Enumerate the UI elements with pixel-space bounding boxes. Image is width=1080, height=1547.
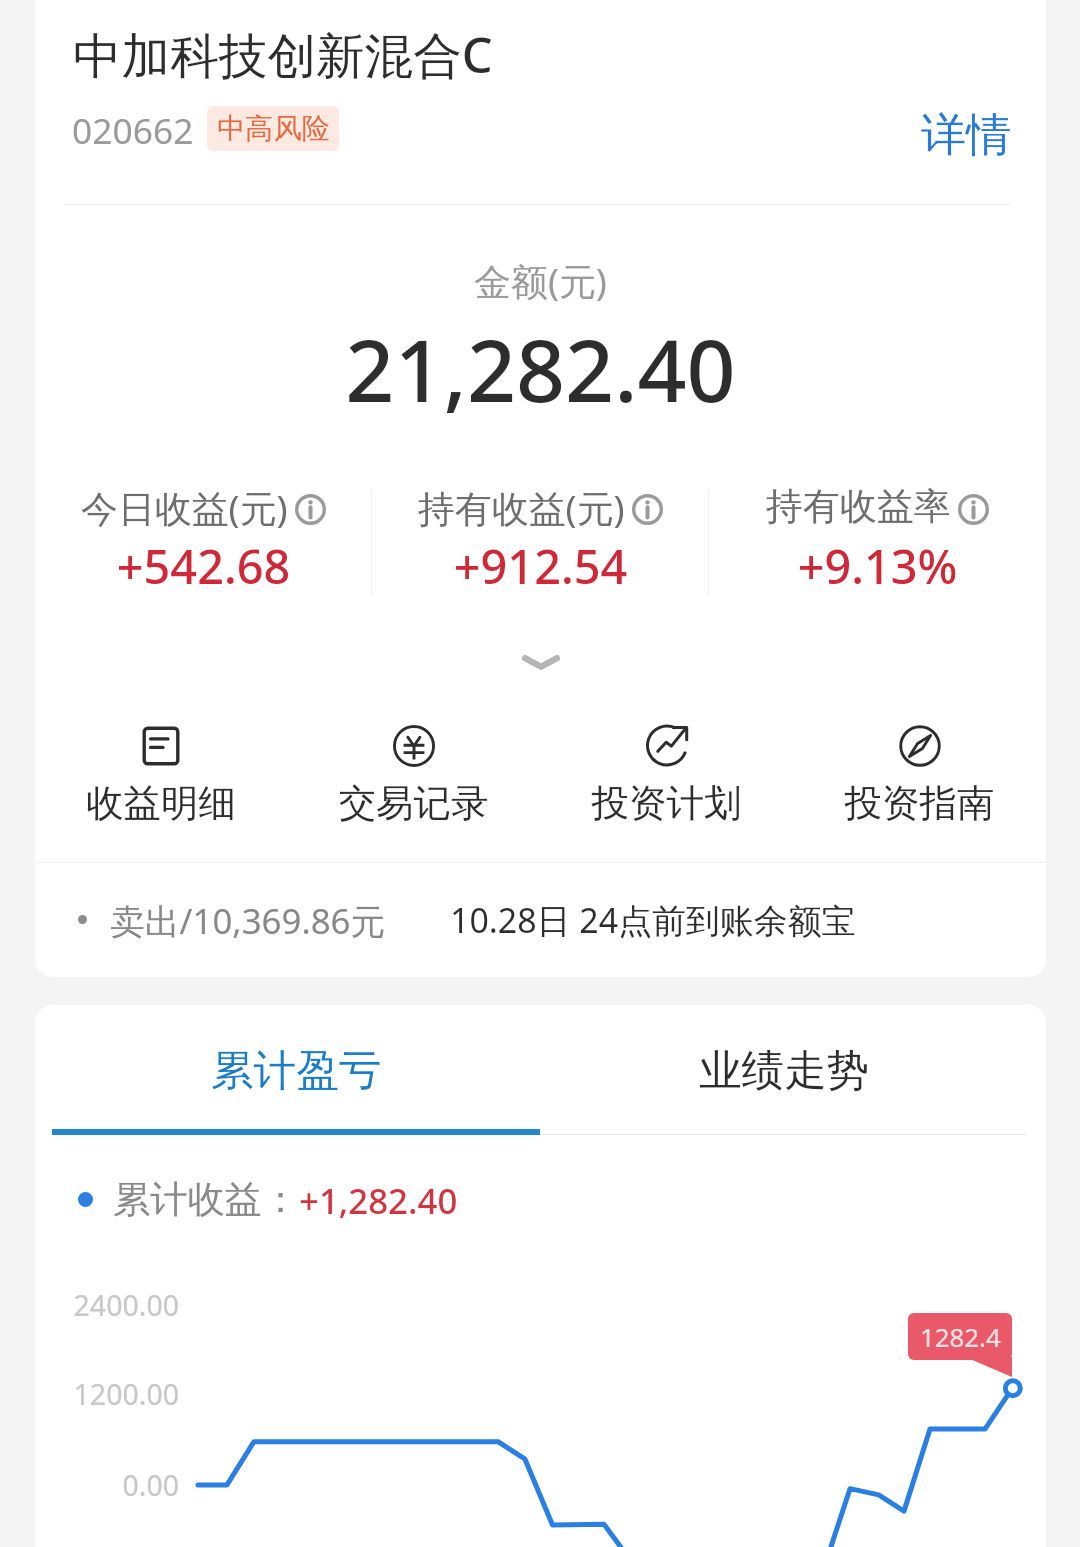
staticText: 1282.4 bbox=[920, 1319, 1001, 1354]
button[interactable]: 今日收益(元) bbox=[35, 470, 372, 605]
staticText: +1,282.40 bbox=[299, 1177, 458, 1224]
staticText: 详情 bbox=[921, 107, 1011, 164]
staticText: 1200.00 bbox=[35, 1375, 179, 1414]
staticText: 21,282.40 bbox=[35, 310, 1046, 427]
staticText: 累计收益： bbox=[113, 1176, 299, 1223]
button[interactable]: 业绩走势 bbox=[540, 1005, 1029, 1134]
staticText: 交易记录 bbox=[287, 780, 540, 827]
staticText: 中高风险 bbox=[217, 111, 330, 147]
button[interactable]: 累计盈亏 bbox=[52, 1005, 540, 1134]
staticText: 020662 bbox=[72, 106, 194, 154]
button[interactable]: 详情 bbox=[915, 107, 1017, 164]
staticText: +912.54 bbox=[372, 534, 709, 598]
button[interactable]: 交易记录 bbox=[287, 711, 540, 841]
staticText: 收益明细 bbox=[35, 780, 287, 827]
button[interactable]: 展开 bbox=[451, 625, 631, 700]
staticText: 10.28日 24点前到账余额宝 bbox=[450, 897, 856, 943]
button[interactable]: 投资指南 bbox=[793, 711, 1046, 841]
staticText: 今日收益(元) bbox=[81, 483, 288, 533]
staticText: 金额(元) bbox=[35, 256, 1046, 306]
button[interactable]: 持有收益率 bbox=[709, 470, 1046, 605]
staticText: 业绩走势 bbox=[699, 1044, 870, 1098]
staticText: 卖出/10,369.86元 bbox=[110, 897, 386, 945]
staticText: 投资指南 bbox=[793, 780, 1046, 827]
staticText: +9.13% bbox=[709, 534, 1046, 598]
staticText: 累计盈亏 bbox=[211, 1044, 382, 1098]
button[interactable]: 投资计划 bbox=[540, 711, 793, 841]
staticText: 持有收益率 bbox=[766, 483, 951, 529]
staticText: 中加科技创新混合C bbox=[73, 21, 493, 87]
staticText: +542.68 bbox=[35, 534, 372, 598]
button[interactable]: 持有收益(元) bbox=[372, 470, 709, 605]
staticText: 2400.00 bbox=[35, 1286, 179, 1325]
button[interactable]: 收益明细 bbox=[35, 711, 287, 841]
staticText: 0.00 bbox=[35, 1466, 179, 1505]
button[interactable]: 卖出/10,369.86元 bbox=[35, 863, 1046, 977]
staticText: 持有收益(元) bbox=[418, 483, 625, 533]
staticText: 投资计划 bbox=[540, 780, 793, 827]
